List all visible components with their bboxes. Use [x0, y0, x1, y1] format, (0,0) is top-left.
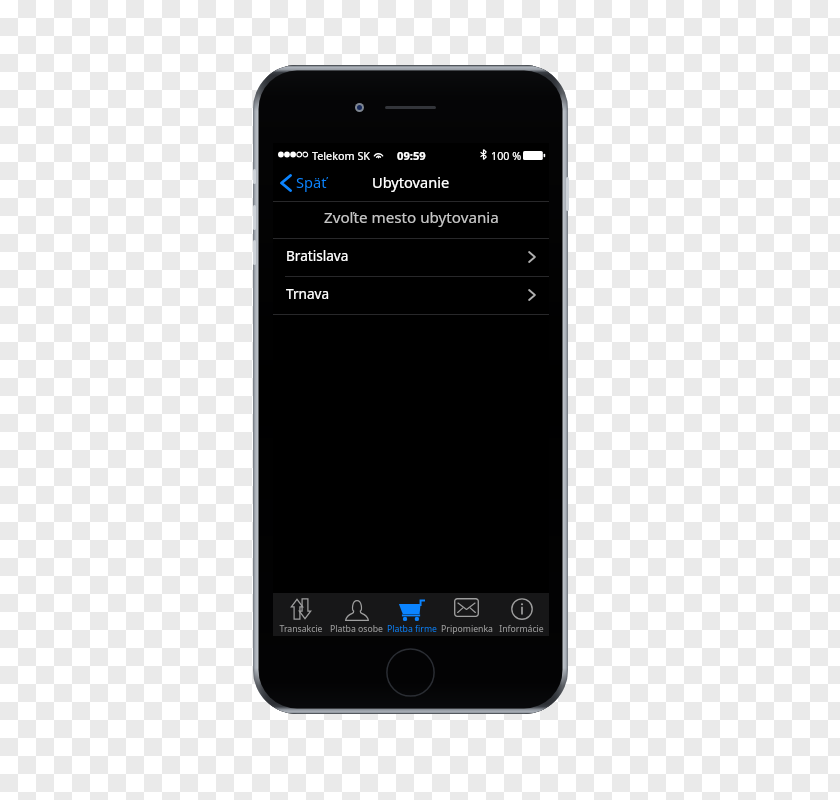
staticText: Späť	[296, 172, 327, 192]
staticText: Trnava	[286, 284, 330, 303]
staticText: Transakcie	[279, 623, 323, 635]
button[interactable]: Späť	[278, 166, 321, 202]
staticText: Platba osobe	[330, 623, 383, 635]
staticText: Platba firme	[387, 623, 437, 635]
button[interactable]: Bratislava	[273, 239, 549, 277]
staticText: Ubytovanie	[372, 172, 450, 192]
button[interactable]: Trnava	[273, 277, 549, 315]
staticText: Zvoľte mesto ubytovania	[324, 207, 499, 228]
button[interactable]: Platba firme	[384, 593, 439, 636]
staticText: 100 %	[491, 148, 522, 163]
button[interactable]: Informácie	[494, 593, 549, 636]
staticText: Telekom SK	[312, 148, 371, 163]
button[interactable]: Platba osobe	[329, 593, 384, 636]
staticText: Pripomienka	[441, 623, 493, 635]
button[interactable]: Transakcie	[273, 593, 329, 636]
staticText: Bratislava	[286, 246, 349, 265]
button[interactable]: Pripomienka	[439, 593, 494, 636]
staticText: Informácie	[499, 623, 544, 635]
staticText: 09:59	[397, 148, 426, 163]
